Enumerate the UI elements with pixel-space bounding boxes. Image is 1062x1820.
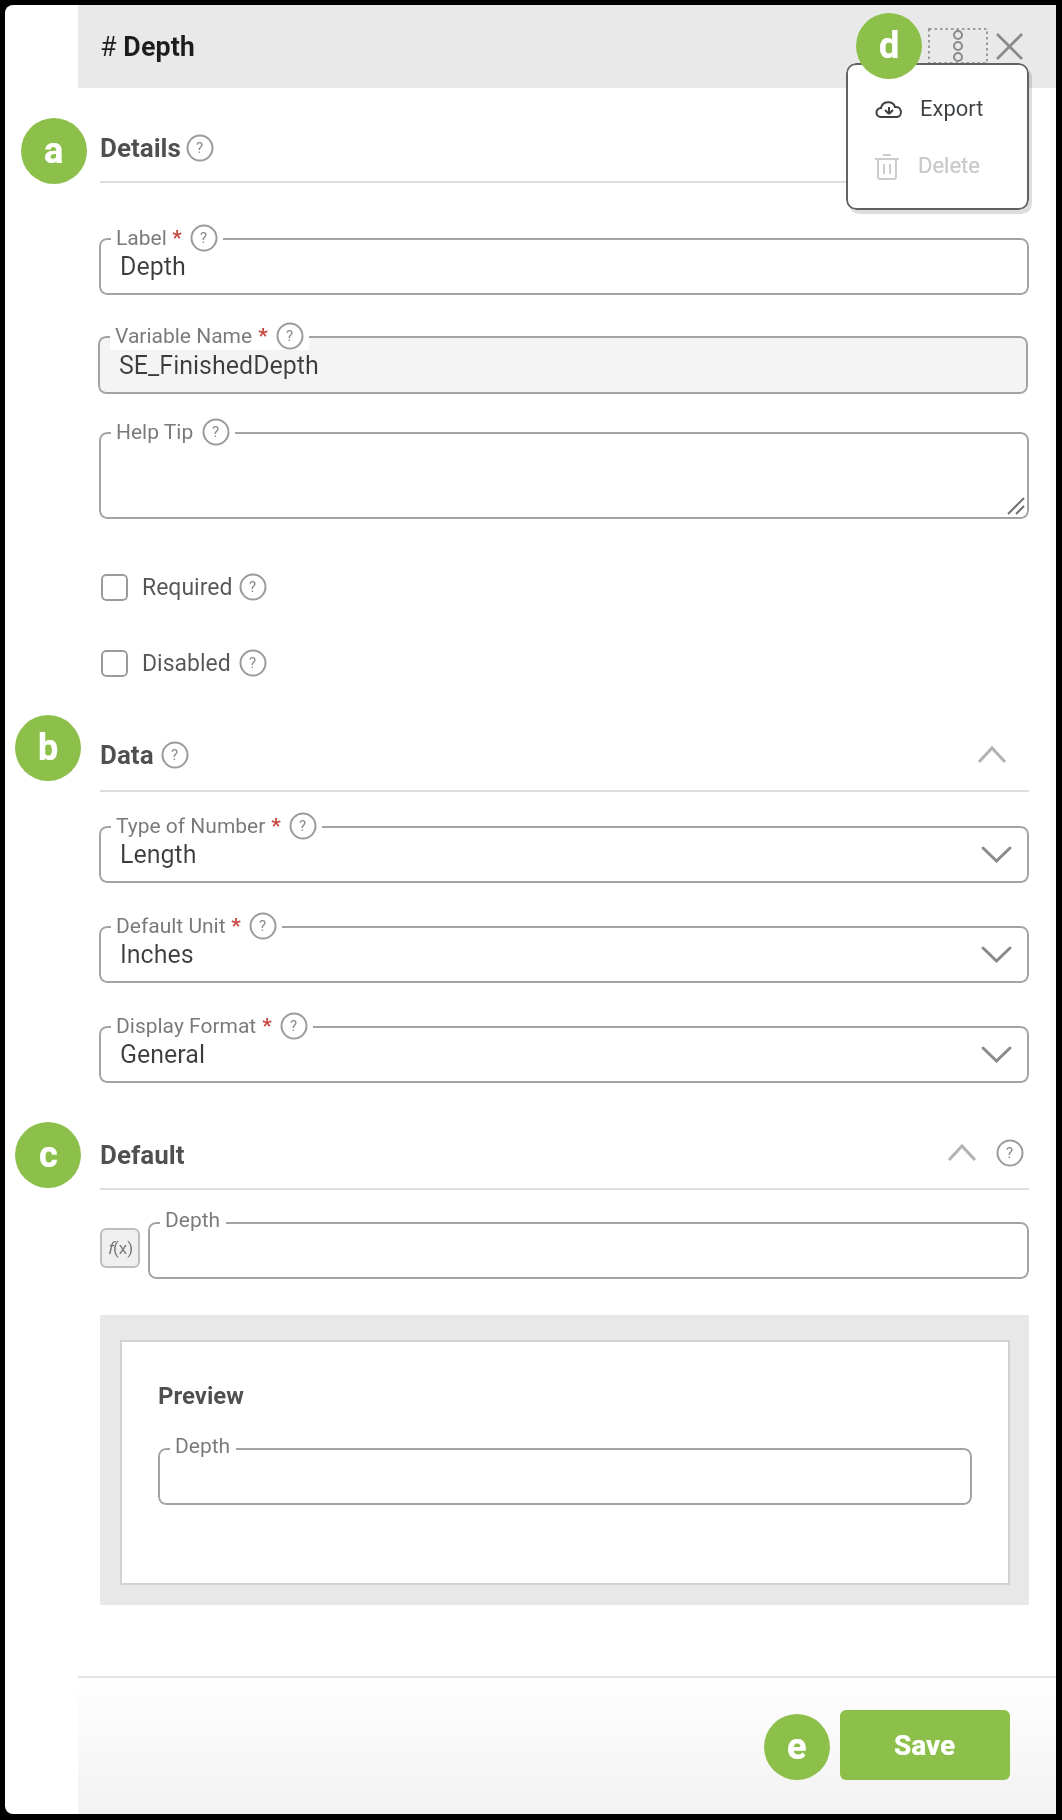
staticText: ? [196,139,204,157]
staticText: ? [1006,1144,1014,1162]
staticText: Label [116,226,167,251]
button[interactable]: f(x) [100,1228,140,1268]
staticText: ? [171,746,179,764]
staticText: d [879,25,900,67]
button[interactable] [99,926,1029,983]
staticText: Type of Number [116,814,266,839]
staticText: Length [120,840,197,869]
staticText: Default [100,1140,185,1170]
button[interactable] [929,29,987,63]
staticText: Variable Name [115,324,253,349]
staticText: Display Format [116,1014,257,1039]
staticText: ? [259,917,267,935]
staticText: Default Unit [116,914,226,939]
staticText: Delete [918,153,980,179]
staticText: Depth [120,252,186,281]
button[interactable]: Delete [846,138,1029,194]
button[interactable] [99,432,1029,519]
staticText: General [120,1040,206,1069]
staticText: ? [290,1017,298,1035]
staticText: a [44,130,64,172]
button[interactable]: Export [846,81,1029,137]
staticText: * [253,324,268,349]
button[interactable] [158,1448,972,1505]
staticText: ? [249,578,257,596]
button[interactable] [101,650,128,677]
button[interactable] [99,238,1029,295]
staticText: e [787,1726,807,1768]
staticText: Depth [165,1208,221,1233]
staticText: ? [212,423,220,441]
button[interactable] [994,31,1025,62]
staticText: ? [200,229,208,247]
staticText: c [39,1134,58,1176]
staticText: Disabled [142,650,231,677]
staticText: * [257,1014,272,1039]
staticText: Depth [175,1434,231,1459]
button[interactable] [99,826,1029,883]
staticText: ? [249,654,257,672]
staticText: * [266,814,281,839]
button[interactable] [99,1026,1029,1083]
staticText: # Depth [100,31,195,63]
staticText: Required [142,574,233,601]
staticText: f(x) [107,1238,134,1258]
staticText: b [38,727,59,769]
staticText: Help Tip [116,420,194,445]
staticText: SE_FinishedDepth [119,351,319,380]
staticText: * [226,914,241,939]
button[interactable] [148,1222,1029,1279]
staticText: Preview [158,1382,244,1410]
button[interactable]: Save [840,1710,1010,1780]
staticText: Data [100,740,154,770]
staticText: Export [920,96,984,122]
staticText: * [167,226,182,251]
staticText: ? [286,327,294,345]
staticText: Inches [120,940,194,969]
staticText: ? [299,817,307,835]
button[interactable] [98,336,1028,394]
staticText: Save [894,1729,956,1762]
button[interactable] [101,574,128,601]
staticText: Details [100,133,181,163]
